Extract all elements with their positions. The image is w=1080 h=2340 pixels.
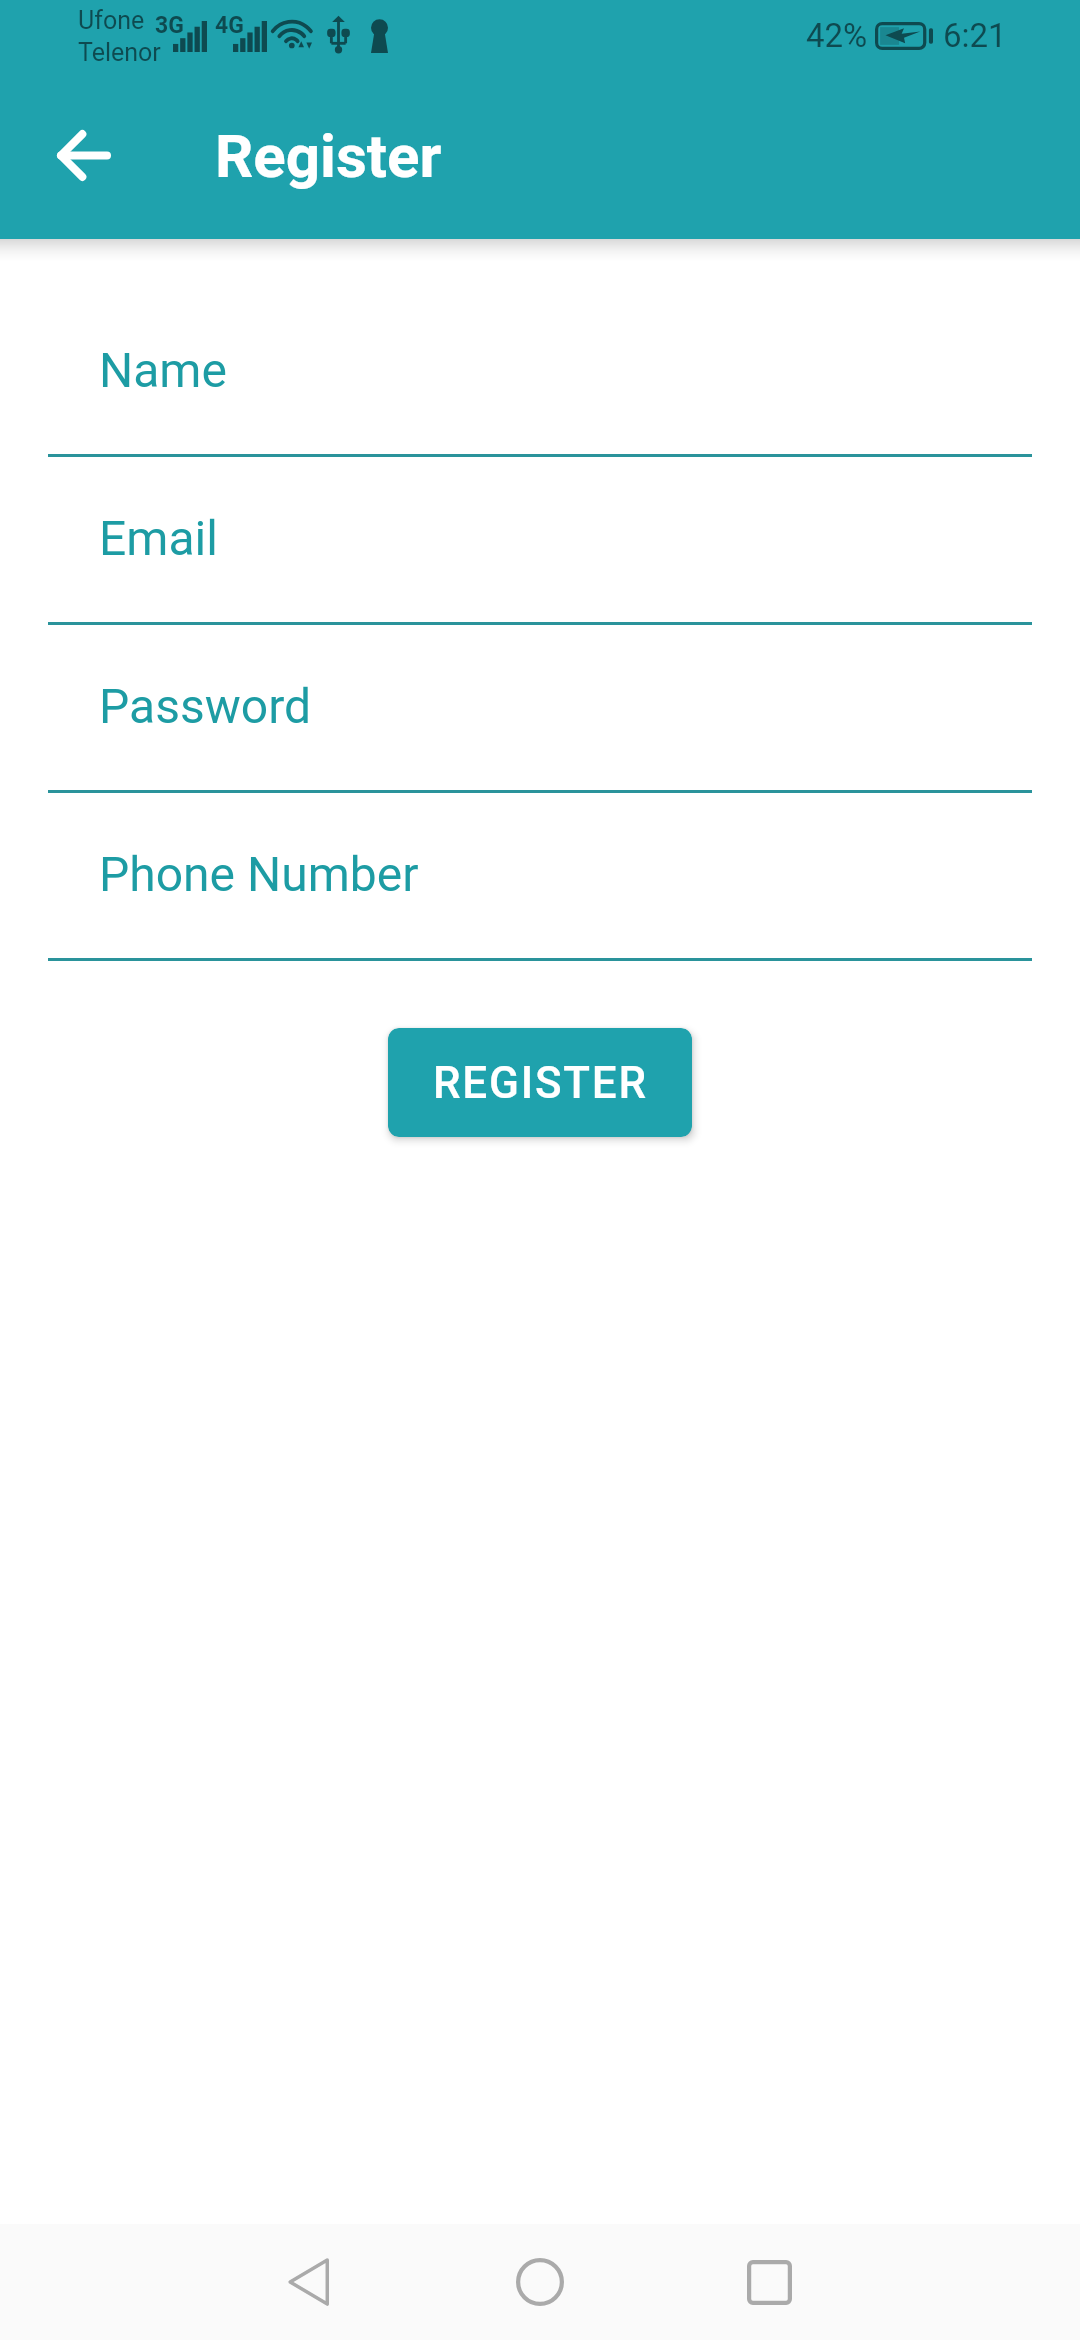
button[interactable]: REGISTER [388,1028,692,1137]
staticText: 6:21 [943,16,1007,55]
staticText: 42% [806,16,868,55]
staticText: 3G [155,12,184,39]
staticText: Name [99,342,227,398]
button[interactable]: Email [0,457,1080,625]
staticText: 4G [215,12,244,39]
button[interactable]: Back [248,2224,368,2340]
button[interactable]: Back [35,107,132,204]
staticText: Password [99,678,312,734]
staticText: Email [99,510,218,566]
staticText: Register [215,121,442,191]
staticText: REGISTER [433,1057,648,1109]
staticText: Telenor [78,38,161,67]
button[interactable]: Phone Number [0,793,1080,961]
button[interactable]: Recent apps [709,2224,829,2340]
button[interactable]: Name [0,289,1080,457]
button[interactable]: Password [0,625,1080,793]
staticText: Ufone [78,6,145,35]
button[interactable]: Home [480,2224,600,2340]
staticText: Phone Number [99,846,419,902]
